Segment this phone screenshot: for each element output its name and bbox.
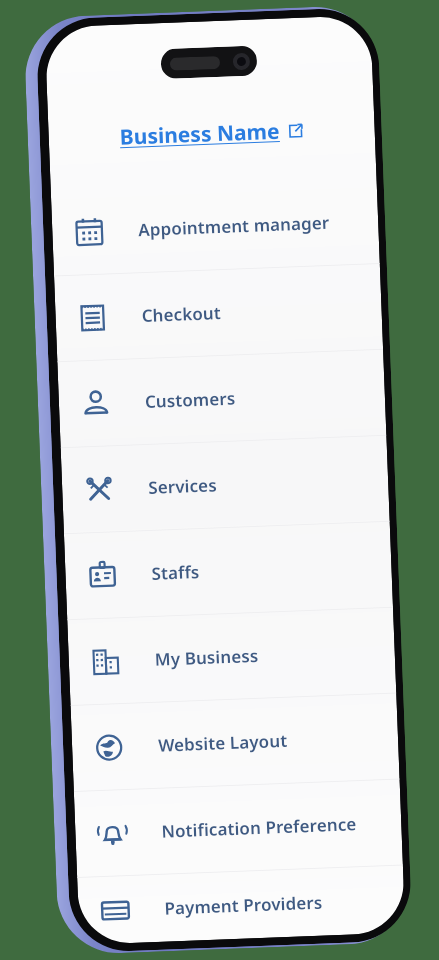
button[interactable]: Appointment manager <box>51 178 380 275</box>
button[interactable]: Business Name <box>113 113 310 154</box>
staticText: Notification Preference <box>161 812 358 843</box>
button[interactable]: Services <box>61 436 390 533</box>
button[interactable]: Website Layout <box>71 694 400 791</box>
staticText: Appointment manager <box>138 211 331 241</box>
staticText: Services <box>148 473 218 499</box>
other: Open business website <box>287 123 304 139</box>
button[interactable]: Payment Providers <box>77 865 405 945</box>
staticText: Staffs <box>151 560 200 585</box>
staticText: My Business <box>154 644 259 671</box>
staticText: Website Layout <box>158 729 288 757</box>
staticText: Checkout <box>141 301 222 327</box>
button[interactable]: Checkout <box>54 264 383 361</box>
button[interactable]: Customers <box>57 350 386 447</box>
staticText: Payment Providers <box>164 891 323 920</box>
button[interactable]: Notification Preference <box>74 779 403 877</box>
staticText: Customers <box>144 386 236 413</box>
button[interactable]: My Business <box>67 608 396 705</box>
button[interactable]: Staffs <box>64 522 393 619</box>
staticText: Business Name <box>119 117 280 152</box>
